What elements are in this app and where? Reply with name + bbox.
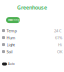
button[interactable]: Soil	[0, 48, 64, 55]
staticText: 24 C	[54, 28, 62, 33]
button[interactable]: Temp	[0, 27, 64, 34]
staticText: Hi	[58, 42, 62, 47]
staticText: Watering	[8, 18, 20, 22]
staticText: Temp	[6, 28, 16, 33]
button[interactable]: Light	[0, 41, 64, 48]
staticText: Hum	[6, 35, 15, 40]
staticText: Light	[6, 42, 14, 47]
staticText: OK	[57, 49, 62, 54]
staticText: Greenhouse	[17, 4, 47, 11]
button[interactable]: Hum	[0, 34, 64, 41]
staticText: Auto	[8, 62, 15, 66]
staticText: 61%	[55, 35, 62, 40]
staticText: Soil	[6, 49, 12, 54]
